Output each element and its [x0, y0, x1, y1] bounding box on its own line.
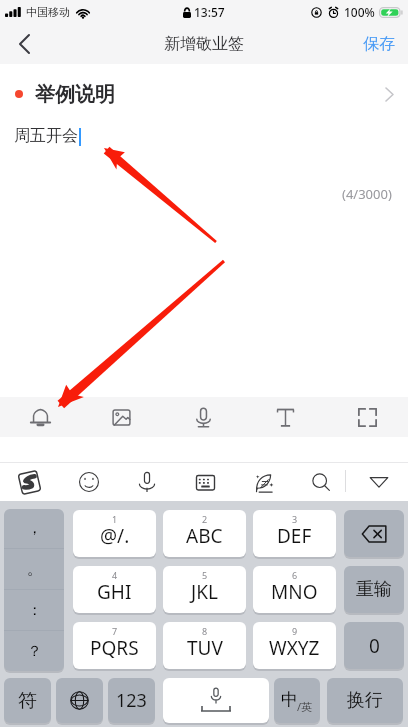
- staticText: 8: [202, 625, 208, 637]
- button[interactable]: 9: [253, 622, 336, 669]
- staticText: TUV: [187, 635, 223, 661]
- button[interactable]: 换行: [327, 678, 403, 723]
- button[interactable]: Back: [0, 24, 48, 64]
- staticText: 。: [27, 560, 42, 579]
- staticText: ，: [27, 519, 42, 538]
- button[interactable]: Space: [163, 678, 269, 723]
- staticText: GHI: [97, 579, 132, 605]
- button[interactable]: Search: [292, 463, 350, 501]
- button[interactable]: 2: [163, 510, 246, 557]
- button[interactable]: 8: [163, 622, 246, 669]
- button[interactable]: Keyboard layout: [176, 463, 234, 501]
- button[interactable]: 重输: [344, 566, 404, 613]
- staticText: 符: [18, 689, 37, 713]
- staticText: 123: [116, 688, 147, 713]
- button[interactable]: Chinese English toggle: [274, 678, 320, 723]
- staticText: /英: [297, 699, 313, 714]
- staticText: DEF: [277, 523, 312, 549]
- button[interactable]: 123: [108, 678, 155, 723]
- button[interactable]: Delete: [344, 510, 404, 557]
- staticText: 3: [292, 513, 298, 525]
- button[interactable]: Punctuation: [4, 509, 64, 671]
- staticText: PQRS: [90, 635, 139, 661]
- staticText: JKL: [191, 579, 218, 605]
- staticText: 6: [292, 569, 298, 581]
- button[interactable]: Reminder: [0, 397, 81, 437]
- staticText: ：: [27, 601, 42, 620]
- staticText: 9: [292, 625, 298, 637]
- staticText: 7: [112, 625, 118, 637]
- staticText: 周五开会: [14, 126, 78, 146]
- button[interactable]: 3: [253, 510, 336, 557]
- staticText: 4: [112, 569, 118, 581]
- button[interactable]: 6: [253, 566, 336, 613]
- button[interactable]: 保存: [350, 24, 408, 64]
- staticText: 中: [281, 689, 298, 710]
- button[interactable]: 5: [163, 566, 246, 613]
- staticText: 0: [369, 633, 380, 659]
- button[interactable]: Hide keyboard: [350, 463, 408, 501]
- staticText: 1: [112, 513, 118, 525]
- button[interactable]: Switch language: [56, 678, 103, 723]
- staticText: 13:57: [194, 4, 225, 20]
- staticText: ？: [27, 642, 42, 661]
- staticText: (4/3000): [342, 185, 392, 203]
- button[interactable]: Sogou input method: [0, 463, 59, 501]
- button[interactable]: Voice input: [162, 397, 244, 437]
- button[interactable]: Insert image: [81, 397, 162, 437]
- staticText: 5: [202, 569, 208, 581]
- staticText: 重输: [356, 578, 392, 601]
- staticText: 保存: [363, 34, 395, 54]
- staticText: @/.: [100, 523, 130, 549]
- staticText: WXYZ: [269, 635, 320, 661]
- button[interactable]: 4: [73, 566, 156, 613]
- button[interactable]: Voice input: [118, 463, 176, 501]
- staticText: 举例说明: [35, 82, 115, 107]
- button[interactable]: 7: [73, 622, 156, 669]
- button[interactable]: 1: [73, 510, 156, 557]
- staticText: MNO: [271, 579, 318, 605]
- staticText: 中国移动: [26, 5, 70, 19]
- button[interactable]: Emoji: [59, 463, 118, 501]
- staticText: 换行: [347, 689, 383, 712]
- button[interactable]: Full screen: [326, 397, 408, 437]
- button[interactable]: 0: [344, 622, 404, 669]
- button[interactable]: 符: [4, 678, 51, 723]
- button[interactable]: 举例说明: [0, 78, 408, 110]
- button[interactable]: Handwriting: [234, 463, 292, 501]
- staticText: 2: [202, 513, 208, 525]
- staticText: 新增敬业签: [164, 34, 244, 54]
- button[interactable]: Text format: [244, 397, 326, 437]
- staticText: ABC: [186, 523, 223, 549]
- staticText: 100%: [344, 4, 375, 20]
